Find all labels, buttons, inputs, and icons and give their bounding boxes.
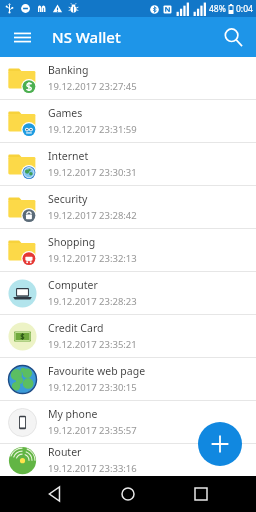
button[interactable]: Back xyxy=(40,479,70,509)
button[interactable]: Favourite web page xyxy=(0,358,256,400)
button[interactable]: Computer xyxy=(0,272,256,314)
staticText: 19.12.2017 23:27:45 xyxy=(48,80,137,93)
staticText: Computer xyxy=(48,278,98,292)
staticText: 19.12.2017 23:28:23 xyxy=(48,295,137,308)
staticText: Credit Card xyxy=(48,321,104,335)
staticText: 19.12.2017 23:35:21 xyxy=(48,338,137,351)
staticText: 48% xyxy=(209,3,226,15)
button[interactable]: My phone xyxy=(0,401,256,443)
staticText: 0:04 xyxy=(236,3,253,15)
staticText: 19.12.2017 23:30:15 xyxy=(48,381,137,394)
staticText: 19.12.2017 23:31:59 xyxy=(48,123,137,136)
button[interactable]: Home xyxy=(113,479,143,509)
button[interactable]: Shopping xyxy=(0,229,256,271)
button[interactable]: Credit Card xyxy=(0,315,256,357)
staticText: My phone xyxy=(48,407,98,421)
button[interactable]: Router xyxy=(0,444,256,476)
staticText: Games xyxy=(48,106,83,120)
button[interactable]: Open navigation menu xyxy=(6,21,38,53)
staticText: Security xyxy=(48,192,88,206)
staticText: 19.12.2017 23:28:42 xyxy=(48,209,137,222)
staticText: NS Wallet xyxy=(52,27,121,47)
button[interactable]: Security xyxy=(0,186,256,228)
staticText: Internet xyxy=(48,149,89,163)
staticText: Banking xyxy=(48,63,89,77)
staticText: Router xyxy=(48,445,82,459)
button[interactable]: Search xyxy=(216,20,250,54)
staticText: 19.12.2017 23:33:16 xyxy=(48,462,137,475)
button[interactable]: Internet xyxy=(0,143,256,185)
button[interactable]: Games xyxy=(0,100,256,142)
button[interactable]: Add entry xyxy=(198,422,242,466)
staticText: Shopping xyxy=(48,235,96,249)
button[interactable]: Banking xyxy=(0,57,256,99)
staticText: 19.12.2017 23:30:31 xyxy=(48,166,137,179)
staticText: Favourite web page xyxy=(48,364,146,378)
button[interactable]: Recent apps xyxy=(186,479,216,509)
staticText: 19.12.2017 23:32:13 xyxy=(48,252,137,265)
staticText: 19.12.2017 23:35:57 xyxy=(48,424,137,437)
